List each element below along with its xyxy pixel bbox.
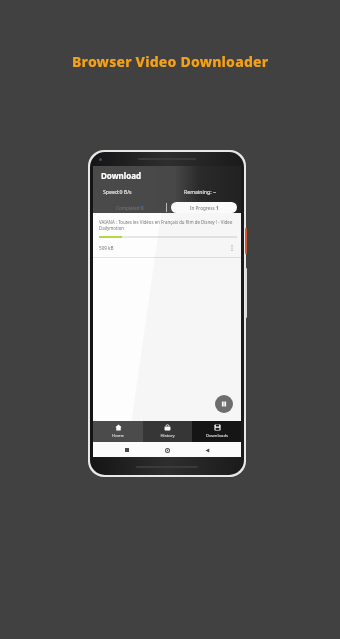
staticText: History (160, 433, 175, 439)
staticText: Completed (116, 205, 141, 211)
button[interactable]: Recent apps (121, 444, 133, 456)
staticText: In Progress (190, 205, 216, 211)
button[interactable]: Back (201, 444, 213, 456)
staticText: Remaining: -- (184, 188, 217, 195)
staticText: Download (101, 170, 141, 181)
button[interactable]: Completed (93, 202, 166, 213)
button[interactable]: Home (93, 421, 143, 442)
button[interactable]: Pause download (215, 395, 233, 413)
staticText: 0 (141, 205, 144, 211)
button[interactable]: History (143, 421, 192, 442)
staticText: VAIANA : Toutes les Vidéos en Français d… (99, 219, 237, 232)
button[interactable]: In Progress (171, 202, 237, 213)
staticText: 509 kB (99, 245, 114, 251)
staticText: Home (112, 433, 124, 439)
button[interactable]: Downloads (192, 421, 241, 442)
staticText: Downloads (206, 433, 228, 439)
staticText: Browser Video Downloader (72, 52, 269, 71)
button[interactable]: Home (161, 444, 173, 456)
staticText: 1 (216, 205, 219, 211)
button[interactable]: VAIANA : Toutes les Vidéos en Français d… (93, 213, 241, 257)
staticText: Speed:0 B/s (103, 188, 132, 195)
button[interactable]: More options (227, 243, 237, 253)
